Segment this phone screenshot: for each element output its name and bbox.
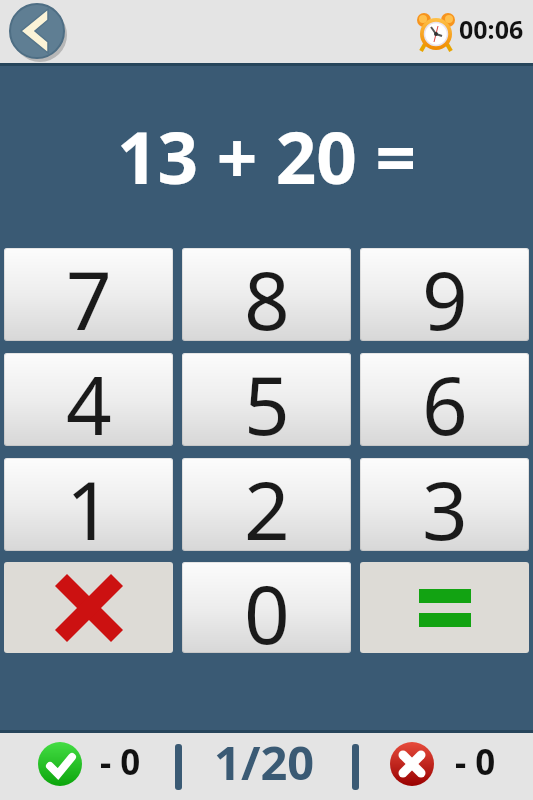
staticText: 3 — [422, 458, 468, 547]
button[interactable] — [4, 562, 173, 653]
staticText: - 0 — [100, 738, 141, 786]
staticText: 2 — [244, 458, 290, 547]
button[interactable]: 5 — [182, 353, 351, 446]
staticText: 0 — [244, 562, 290, 649]
staticText: 1/20 — [214, 730, 315, 794]
staticText: 00:06 — [459, 12, 524, 46]
button[interactable]: 9 — [360, 248, 529, 341]
staticText: 9 — [422, 248, 468, 337]
button[interactable]: 8 — [182, 248, 351, 341]
button[interactable]: 0 — [182, 562, 351, 653]
button[interactable]: 2 — [182, 458, 351, 551]
staticText: 4 — [66, 353, 112, 442]
staticText: 13 + 20 = — [117, 108, 417, 205]
button[interactable]: 6 — [360, 353, 529, 446]
button[interactable]: 7 — [4, 248, 173, 341]
button[interactable]: 3 — [360, 458, 529, 551]
button[interactable]: 1 — [4, 458, 173, 551]
staticText: 6 — [422, 353, 468, 442]
staticText: 7 — [66, 248, 112, 337]
staticText: 1 — [66, 458, 112, 547]
staticText: 5 — [244, 353, 290, 442]
button[interactable]: 4 — [4, 353, 173, 446]
button[interactable] — [360, 562, 529, 653]
staticText: - 0 — [455, 738, 496, 786]
button[interactable] — [9, 3, 67, 61]
staticText: 8 — [244, 248, 290, 337]
